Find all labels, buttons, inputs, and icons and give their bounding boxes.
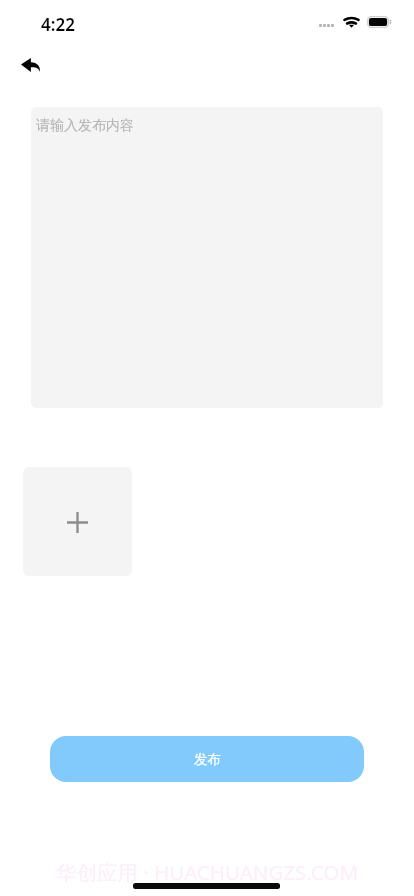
- staticText: 请输入发布内容: [36, 117, 134, 135]
- button[interactable]: 发布: [50, 736, 364, 782]
- button[interactable]: Back: [8, 43, 52, 87]
- button[interactable]: Add image: [23, 467, 132, 576]
- staticText: 华创应用 · HUACHUANGZS.COM: [0, 858, 414, 886]
- button[interactable]: 请输入发布内容: [31, 107, 383, 408]
- staticText: 4:22: [41, 13, 75, 36]
- staticText: 发布: [194, 751, 221, 768]
